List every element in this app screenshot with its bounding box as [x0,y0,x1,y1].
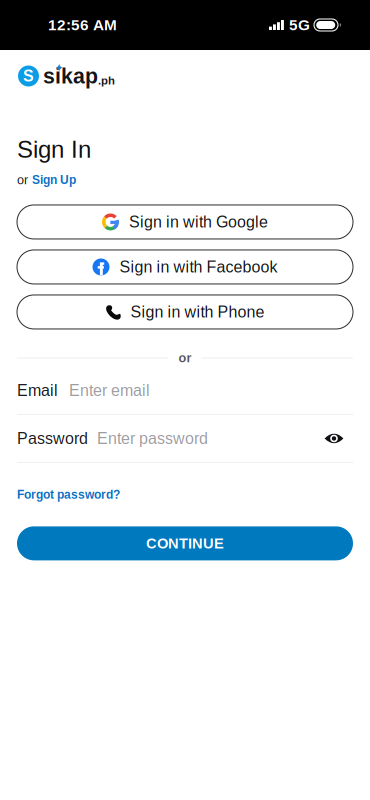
staticText: Sign in with Google [129,213,268,231]
staticText: Forgot password? [17,488,120,501]
staticText: Sign in with Phone [130,303,264,321]
button[interactable]: Sign Up [32,173,76,187]
staticText: Sign Up [32,173,76,187]
staticText: Enter email [69,381,150,399]
staticText: sikap [43,64,98,88]
staticText: S [23,67,34,85]
button[interactable]: Show password [324,431,344,445]
staticText: Email [17,381,58,399]
button[interactable]: Sign in with Facebook [17,250,353,284]
staticText: CONTINUE [146,535,224,552]
button[interactable]: CONTINUE [17,526,353,560]
button[interactable]: Forgot password? [17,488,120,501]
staticText: Password [17,429,88,447]
button[interactable]: Sign in with Phone [17,295,353,329]
staticText: Enter password [97,429,208,447]
staticText: Sign In [17,136,91,163]
staticText: .ph [98,74,115,87]
staticText: 12:56 AM [48,16,117,33]
staticText: or [17,173,28,187]
button[interactable]: Sign in with Google [17,205,353,239]
staticText: or [178,351,191,365]
staticText: Sign in with Facebook [119,258,277,276]
staticText: 5G [289,16,310,33]
